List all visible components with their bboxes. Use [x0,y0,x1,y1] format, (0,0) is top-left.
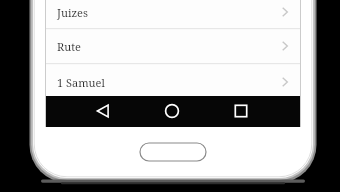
button[interactable]: Home [156,96,188,127]
button[interactable]: Juizes [46,0,300,28]
button[interactable]: Home button [140,141,206,163]
button[interactable]: Recent apps [225,96,257,127]
button[interactable]: Back [88,96,120,127]
button[interactable]: 1 Samuel [46,64,300,96]
button[interactable]: Rute [46,29,300,63]
